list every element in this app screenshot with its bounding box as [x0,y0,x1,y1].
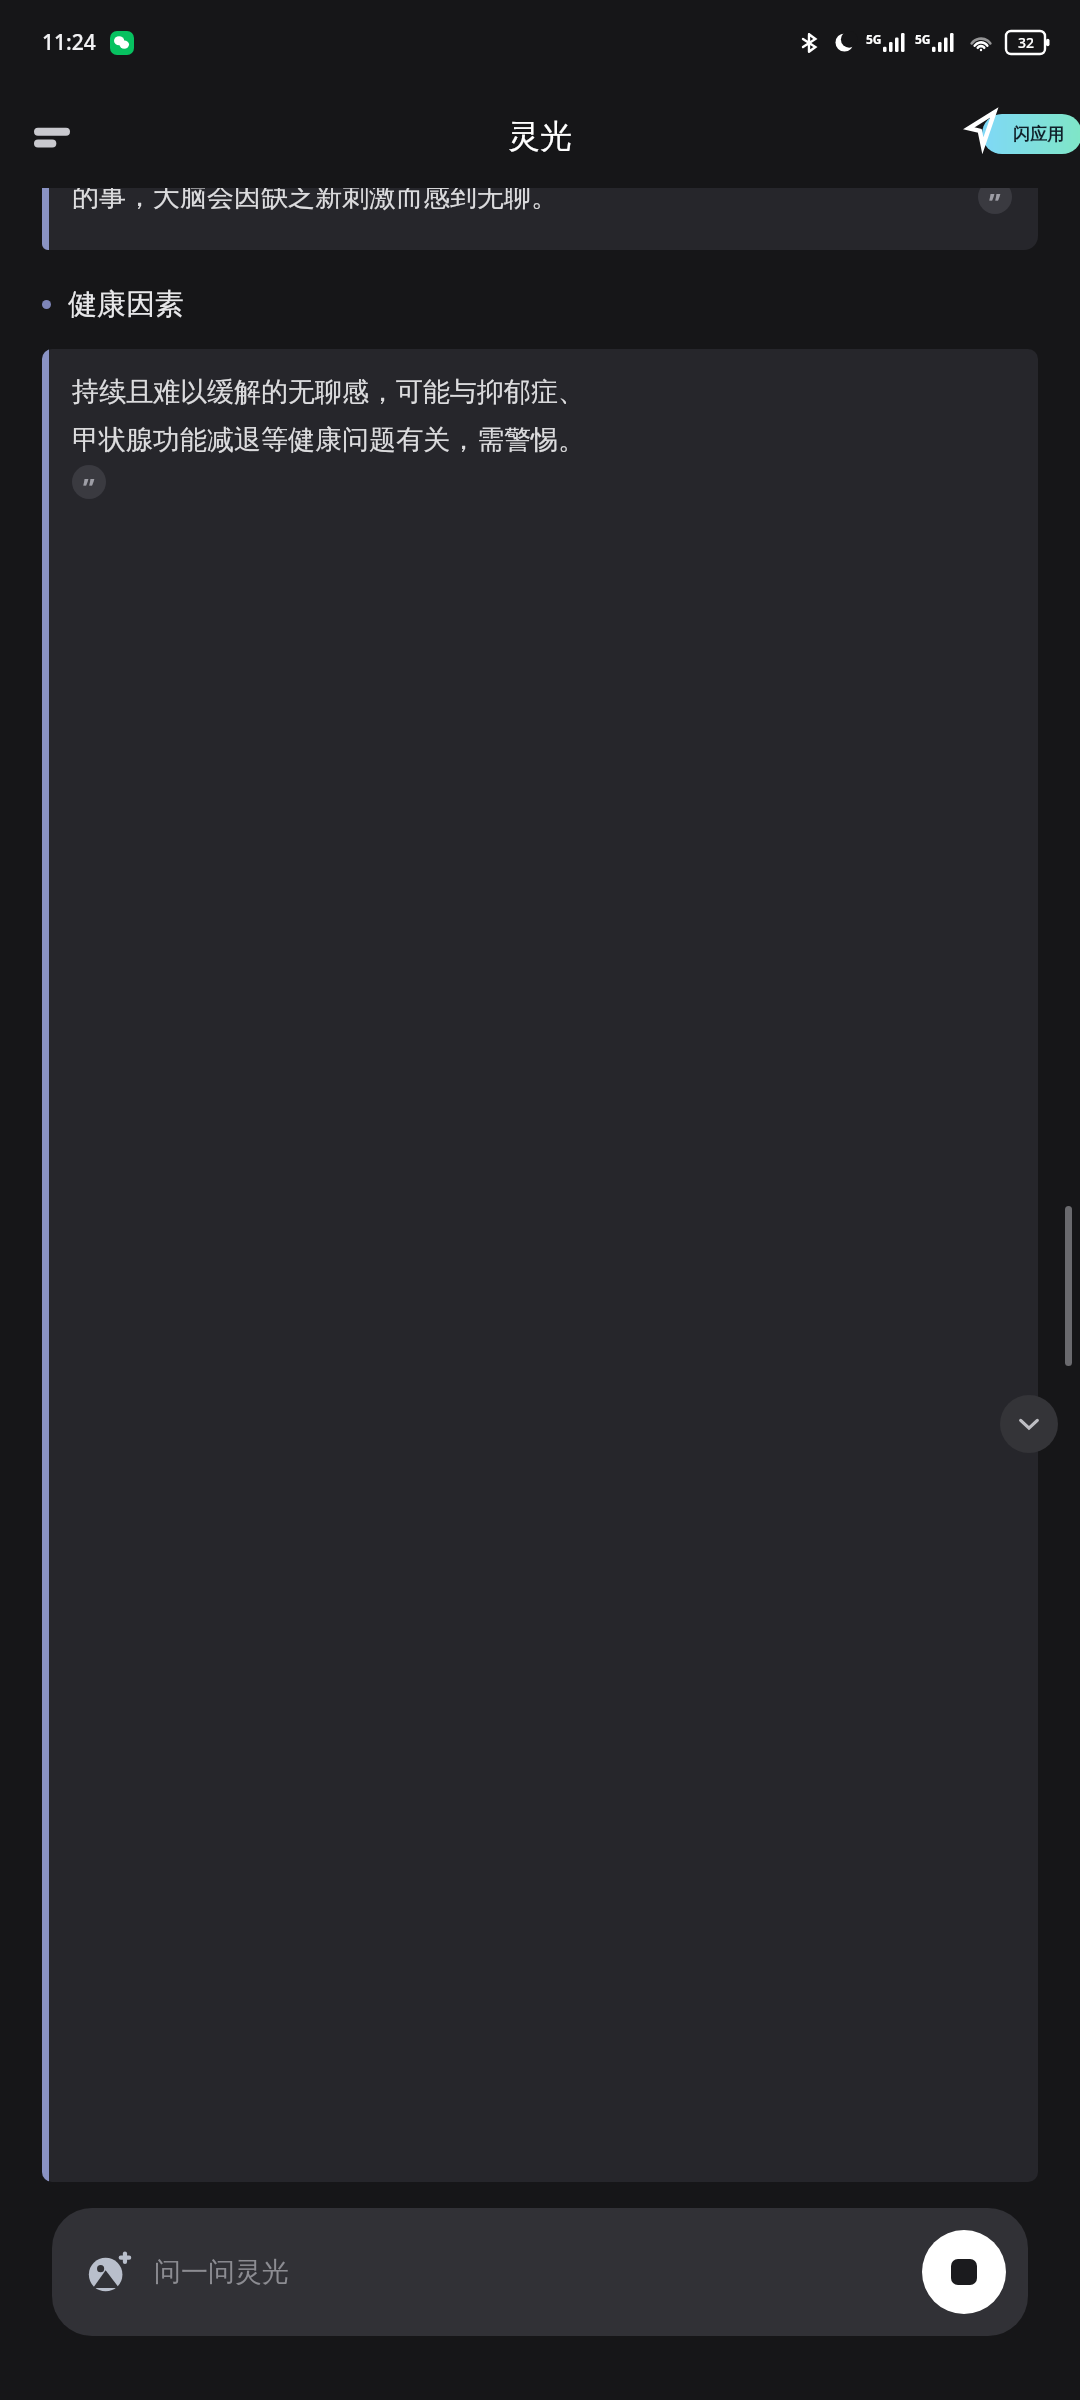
staticText: 32 [1018,33,1035,52]
staticText: 的事，大脑会因缺乏新刺激而感到无聊。 [72,188,558,214]
staticText: 5G [866,31,882,47]
staticText: 灵光 [508,116,572,156]
staticText: ” [989,188,1001,214]
staticText: ” [83,470,95,499]
staticText: 问一问灵光 [154,2255,289,2289]
button[interactable]: Add image [52,2208,1028,2336]
button[interactable]: Add image [86,2249,132,2295]
button[interactable]: Stop [922,2230,1006,2314]
button[interactable]: 闪应用 [962,114,1062,158]
button[interactable]: Scroll to bottom [1000,1395,1058,1453]
button[interactable]: Menu [22,106,82,166]
staticText: 健康因素 [68,286,184,323]
staticText: 闪应用 [1013,124,1064,145]
staticText: 甲状腺功能减退等健康问题有关，需警惕。 [72,423,585,457]
staticText: 11:24 [42,28,96,57]
staticText: 5G [915,31,931,47]
staticText: 持续且难以缓解的无聊感，可能与抑郁症、 [72,375,585,409]
